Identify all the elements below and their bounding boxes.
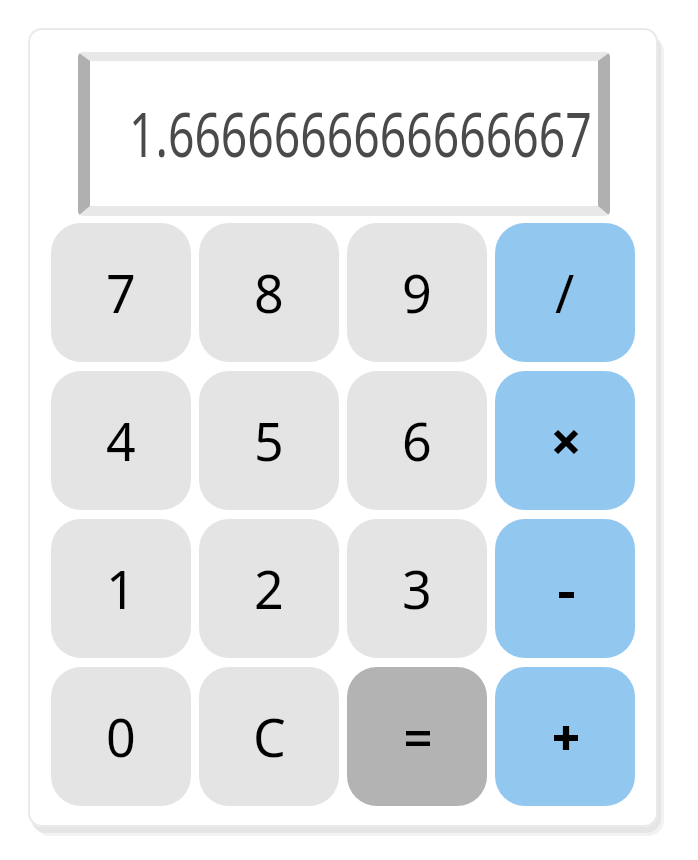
staticText: 8 [254,257,284,328]
staticText: 3 [402,553,432,624]
staticText: C [253,701,286,772]
staticText: 7 [106,257,136,328]
button[interactable]: 4 [51,371,191,510]
button[interactable] [495,371,635,510]
button[interactable]: 2 [199,519,339,658]
button[interactable]: 5 [199,371,339,510]
button[interactable] [495,519,635,658]
staticText: / [555,257,575,328]
staticText: 9 [402,257,432,328]
button[interactable]: C [199,667,339,806]
staticText: 0 [106,701,136,772]
button[interactable] [495,667,635,806]
button[interactable]: 7 [51,223,191,362]
staticText: 5 [254,405,284,476]
button[interactable]: 1 [51,519,191,658]
button[interactable]: 6 [347,371,487,510]
button[interactable]: 9 [347,223,487,362]
staticText: 6 [402,405,432,476]
staticText: 1 [106,553,136,624]
button[interactable]: / [495,223,635,362]
button[interactable]: 0 [51,667,191,806]
button[interactable] [347,667,487,806]
staticText: 4 [106,405,136,476]
button[interactable]: 8 [199,223,339,362]
staticText: 2 [254,553,284,624]
button[interactable]: 3 [347,519,487,658]
